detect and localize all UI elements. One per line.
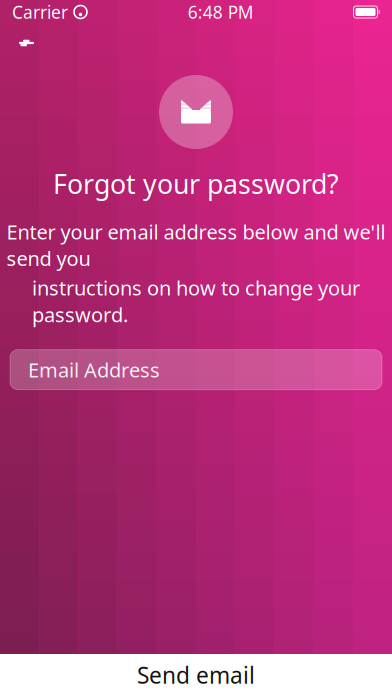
- staticText: instructions on how to change your passw…: [32, 274, 360, 328]
- staticText: Forgot your password?: [53, 166, 339, 201]
- button[interactable]: Back: [8, 28, 42, 58]
- staticText: Enter your email address below and we'll…: [6, 218, 385, 271]
- staticText: Email Address: [28, 356, 160, 383]
- staticText: Carrier: [12, 0, 68, 23]
- staticText: 6:48 PM: [188, 0, 254, 23]
- staticText: Send email: [137, 660, 255, 690]
- button[interactable]: Email Address: [10, 350, 382, 390]
- button[interactable]: Send email: [0, 654, 392, 696]
